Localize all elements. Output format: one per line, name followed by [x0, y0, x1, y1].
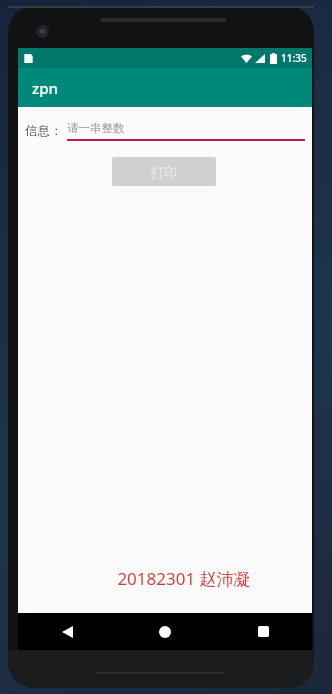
- button[interactable]: Home: [116, 613, 214, 650]
- button[interactable]: Back: [18, 613, 116, 650]
- staticText: zpn: [32, 78, 58, 98]
- button[interactable]: 打印: [112, 157, 216, 186]
- staticText: 20182301 赵沛凝: [117, 567, 251, 590]
- staticText: 请一串整数: [67, 121, 125, 135]
- button[interactable]: 请一串整数: [67, 121, 305, 141]
- button[interactable]: Recent apps: [214, 613, 312, 650]
- staticText: 信息：: [25, 123, 63, 139]
- staticText: 打印: [151, 164, 177, 180]
- staticText: 11:35: [281, 51, 307, 65]
